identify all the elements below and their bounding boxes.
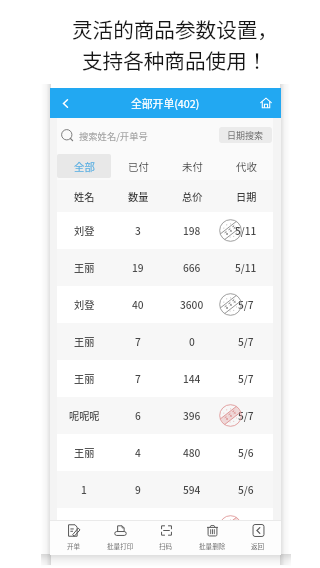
staticText: 40 bbox=[132, 297, 144, 312]
button[interactable]: 搜索姓名/开单号 bbox=[61, 118, 219, 152]
staticText: 日期 bbox=[236, 189, 257, 204]
staticText: 支持各种商品使用！ bbox=[82, 45, 268, 75]
button[interactable]: 代收 bbox=[219, 152, 273, 180]
staticText: 刘登 bbox=[74, 223, 95, 238]
staticText: 呢呢呢 bbox=[69, 408, 100, 423]
staticText: 总价 bbox=[182, 189, 203, 204]
staticText: 未付 bbox=[182, 159, 203, 174]
staticText: 5/6 bbox=[238, 445, 254, 460]
button[interactable]: 返回 bbox=[50, 88, 80, 118]
staticText: 5/7 bbox=[238, 334, 254, 349]
staticText: 6 bbox=[135, 408, 141, 423]
staticText: 396 bbox=[183, 408, 201, 423]
staticText: 198 bbox=[183, 223, 201, 238]
button[interactable]: 王丽 bbox=[57, 360, 273, 397]
staticText: 姓名 bbox=[74, 189, 95, 204]
staticText: 5/7 bbox=[238, 371, 254, 386]
staticText: 王丽 bbox=[74, 260, 95, 275]
staticText: 5/7 bbox=[238, 297, 254, 312]
button[interactable]: 日期搜索 bbox=[219, 127, 272, 143]
button[interactable]: 扫码 bbox=[143, 521, 189, 555]
staticText: 数量 bbox=[128, 189, 149, 204]
staticText: 480 bbox=[183, 445, 201, 460]
staticText: 7 bbox=[135, 334, 141, 349]
staticText: 594 bbox=[183, 482, 201, 497]
staticText: 3 bbox=[135, 223, 141, 238]
button[interactable]: 已付 bbox=[111, 152, 165, 180]
staticText: 9 bbox=[135, 482, 141, 497]
staticText: 全部 bbox=[74, 159, 95, 174]
staticText: 0 bbox=[189, 334, 195, 349]
staticText: 批量删除 bbox=[199, 541, 226, 551]
staticText: 5/7 bbox=[238, 408, 254, 423]
staticText: 搜索姓名/开单号 bbox=[79, 129, 148, 142]
button[interactable]: 刘登 bbox=[57, 286, 273, 323]
button[interactable]: 未付 bbox=[165, 152, 219, 180]
staticText: 已付 bbox=[128, 159, 149, 174]
staticText: 19 bbox=[132, 260, 144, 275]
button[interactable]: 王丽 bbox=[57, 249, 273, 286]
button[interactable]: 批量删除 bbox=[189, 521, 235, 555]
button[interactable]: 开单 bbox=[50, 521, 97, 555]
staticText: 144 bbox=[183, 371, 201, 386]
staticText: 王丽 bbox=[74, 445, 95, 460]
staticText: 全部开单(402) bbox=[131, 95, 200, 111]
button[interactable]: 批量打印 bbox=[97, 521, 143, 555]
button[interactable]: 呢呢呢 bbox=[57, 397, 273, 434]
staticText: 开单 bbox=[67, 541, 81, 551]
staticText: 日期搜索 bbox=[227, 129, 264, 142]
staticText: 5/11 bbox=[235, 260, 257, 275]
staticText: 灵活的商品参数设置， bbox=[72, 14, 278, 44]
staticText: 7 bbox=[135, 371, 141, 386]
staticText: 扫码 bbox=[159, 541, 173, 551]
button[interactable]: 全部 bbox=[57, 152, 111, 180]
staticText: 3600 bbox=[180, 297, 204, 312]
staticText: 王丽 bbox=[74, 371, 95, 386]
staticText: 5/6 bbox=[238, 482, 254, 497]
staticText: 4 bbox=[135, 445, 141, 460]
button[interactable]: 首页 bbox=[251, 88, 281, 118]
staticText: 1 bbox=[81, 482, 87, 497]
staticText: 代收 bbox=[236, 159, 257, 174]
button[interactable]: 刘登 bbox=[57, 212, 273, 249]
staticText: 5/11 bbox=[235, 223, 257, 238]
staticText: 批量打印 bbox=[107, 541, 134, 551]
staticText: 666 bbox=[183, 260, 201, 275]
staticText: 刘登 bbox=[74, 297, 95, 312]
button[interactable]: 1 bbox=[57, 471, 273, 508]
button[interactable]: 王丽 bbox=[57, 323, 273, 360]
button[interactable]: 王丽 bbox=[57, 508, 273, 545]
staticText: 5/6 bbox=[238, 519, 254, 534]
staticText: 120 bbox=[183, 519, 201, 534]
staticText: 王丽 bbox=[74, 519, 95, 534]
staticText: 王丽 bbox=[74, 334, 95, 349]
staticText: 2 bbox=[135, 519, 141, 534]
button[interactable]: 王丽 bbox=[57, 434, 273, 471]
staticText: 返回 bbox=[251, 541, 265, 551]
button[interactable]: 返回 bbox=[235, 521, 281, 555]
